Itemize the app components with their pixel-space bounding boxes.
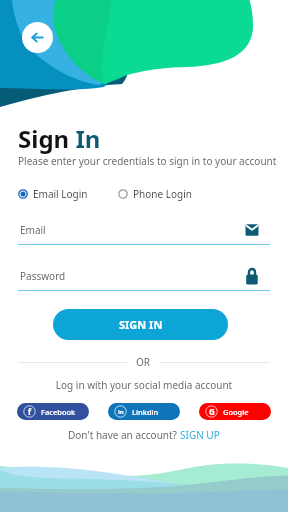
staticText: f — [28, 406, 32, 417]
button[interactable]: Email Login — [18, 187, 88, 201]
staticText: Password — [20, 269, 66, 283]
staticText: Email Login — [33, 187, 88, 201]
staticText: Facebook — [41, 407, 76, 417]
staticText: G — [209, 406, 215, 417]
button[interactable]: in — [108, 403, 180, 420]
staticText: Log in with your social media account — [0, 378, 288, 392]
staticText: Phone Login — [133, 187, 192, 201]
button[interactable]: SIGN UP — [180, 428, 220, 442]
staticText: OR — [136, 355, 151, 369]
button[interactable]: f — [17, 403, 89, 420]
button[interactable]: Back — [22, 22, 53, 53]
staticText: Linkdin — [132, 407, 159, 417]
other: Password — [245, 267, 259, 285]
button[interactable]: SIGN IN — [53, 309, 228, 340]
staticText: in — [118, 408, 124, 416]
staticText: Please enter your credentials to sign in… — [18, 154, 277, 168]
button[interactable]: Phone Login — [118, 187, 192, 201]
staticText: Sign In — [18, 122, 101, 155]
other: Email — [245, 221, 259, 239]
staticText: Email — [20, 223, 46, 237]
staticText: Google — [223, 407, 249, 417]
staticText: Don't have an account? — [68, 428, 180, 442]
staticText: SIGN IN — [119, 317, 163, 332]
button[interactable]: G — [199, 403, 271, 420]
